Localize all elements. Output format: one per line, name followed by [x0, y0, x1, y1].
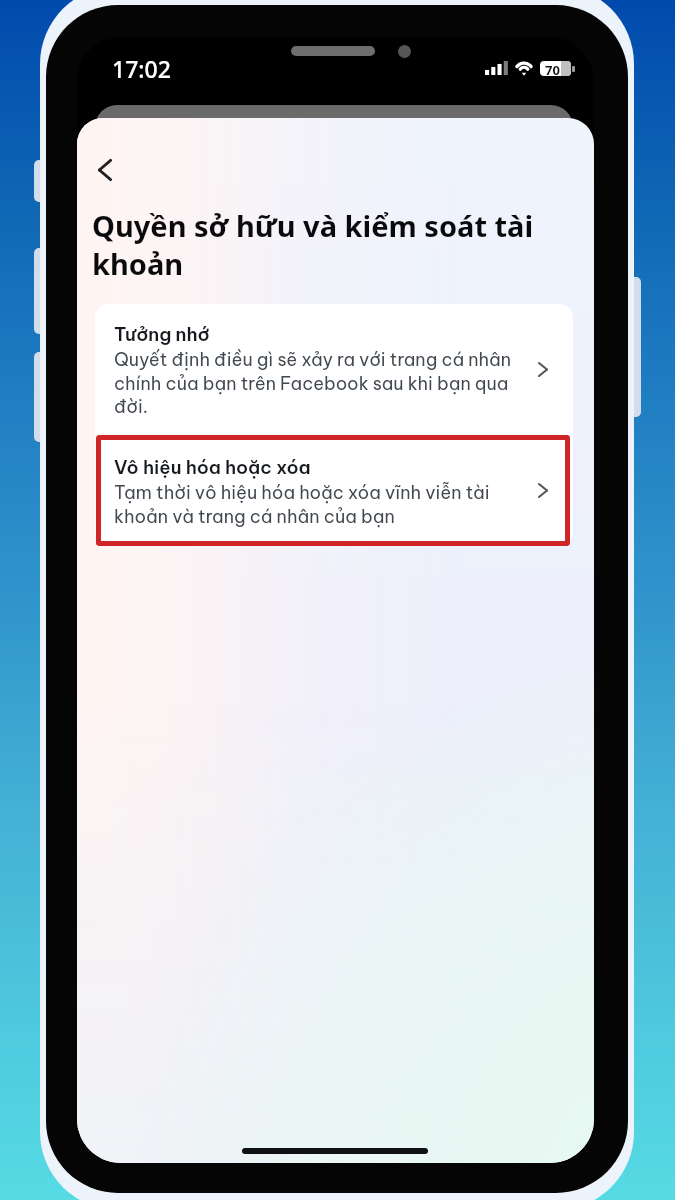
button[interactable]: Vô hiệu hóa hoặc xóa — [95, 435, 573, 546]
staticText: 70 — [545, 61, 560, 76]
button[interactable]: Tưởng nhớ — [95, 304, 573, 435]
staticText: Vô hiệu hóa hoặc xóa — [114, 455, 311, 478]
staticText: 17:02 — [112, 53, 171, 84]
staticText: Quyền sở hữu và kiểm soát tài khoản — [92, 206, 550, 283]
staticText: Tạm thời vô hiệu hóa hoặc xóa vĩnh viễn … — [114, 481, 518, 527]
staticText: Quyết định điều gì sẽ xảy ra với trang c… — [114, 348, 518, 417]
button[interactable]: Back — [83, 148, 127, 192]
staticText: Tưởng nhớ — [114, 322, 210, 345]
